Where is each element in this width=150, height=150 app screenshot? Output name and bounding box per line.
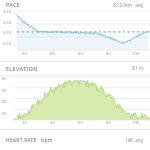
button[interactable]: PACE bbox=[0, 0, 150, 9]
staticText: HEART RATE bpm bbox=[6, 137, 53, 144]
staticText: 60 bbox=[78, 51, 83, 57]
staticText: 3:30 bbox=[3, 9, 11, 14]
staticText: 80 bbox=[106, 51, 111, 57]
button[interactable]: ELEVATION bbox=[0, 62, 150, 75]
staticText: 40 bbox=[50, 120, 55, 126]
button[interactable]: Heart rate section bbox=[0, 130, 150, 150]
staticText: 100 bbox=[132, 120, 140, 126]
staticText: 100 bbox=[132, 51, 140, 57]
staticText: 60 bbox=[2, 88, 7, 93]
staticText: PACE bbox=[6, 1, 20, 8]
staticText: 81 m bbox=[132, 65, 144, 72]
staticText: 20 bbox=[22, 120, 27, 126]
staticText: 5:12 /km avg bbox=[113, 2, 144, 8]
staticText: 40 bbox=[50, 51, 55, 57]
staticText: 80 bbox=[106, 120, 111, 126]
staticText: 4:30 bbox=[3, 20, 11, 25]
staticText: 60 bbox=[78, 120, 83, 126]
staticText: 40 bbox=[2, 99, 7, 104]
staticText: 5:30 bbox=[3, 30, 11, 35]
staticText: 148 avg bbox=[125, 137, 144, 143]
staticText: 80 bbox=[2, 76, 7, 81]
staticText: 20 bbox=[22, 51, 27, 57]
staticText: 6:30 bbox=[3, 41, 11, 46]
staticText: 20 bbox=[2, 111, 7, 116]
staticText: ELEVATION bbox=[6, 65, 38, 72]
